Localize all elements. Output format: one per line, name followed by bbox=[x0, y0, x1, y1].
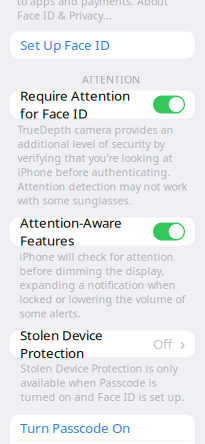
button[interactable]: Turn Passcode On bbox=[10, 415, 195, 441]
staticText: Set Up Face ID bbox=[20, 36, 110, 54]
staticText: iPhone will check for attention before d… bbox=[19, 249, 185, 320]
button[interactable]: Set Up Face ID bbox=[10, 31, 195, 58]
staticText: Off bbox=[153, 335, 172, 353]
staticText: › bbox=[176, 333, 185, 354]
staticText: Require Attention for Face ID bbox=[20, 87, 130, 122]
button[interactable]: Require Attention for Face ID bbox=[10, 90, 195, 118]
staticText: Stolen Device Protection is only availab… bbox=[20, 361, 184, 404]
staticText: TrueDepth camera provides an additional … bbox=[17, 122, 187, 207]
staticText: Attention-Aware Features bbox=[20, 214, 122, 249]
staticText: iPhone can recognise the unique, three-d… bbox=[17, 0, 188, 22]
button[interactable]: Stolen Device Protection bbox=[10, 330, 195, 357]
staticText: Stolen Device Protection bbox=[20, 326, 103, 362]
staticText: ATTENTION bbox=[82, 72, 140, 87]
button[interactable]: Attention-Aware Features bbox=[10, 217, 195, 245]
staticText: Turn Passcode On bbox=[20, 419, 130, 437]
